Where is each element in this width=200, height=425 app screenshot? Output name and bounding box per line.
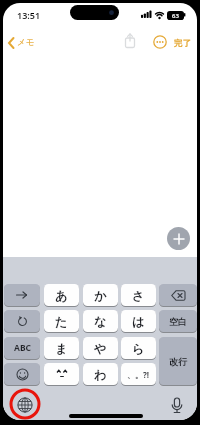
staticText: は xyxy=(132,314,145,329)
button[interactable] xyxy=(159,284,197,306)
button[interactable]: や xyxy=(83,337,118,359)
button[interactable]: か xyxy=(83,284,118,306)
staticText: ま xyxy=(55,341,68,356)
button[interactable]: ABC xyxy=(4,337,40,359)
button[interactable] xyxy=(44,363,79,385)
button[interactable]: な xyxy=(83,310,118,332)
staticText: 改行 xyxy=(169,356,187,367)
staticText: あ xyxy=(55,288,68,303)
staticText: 空白 xyxy=(169,316,187,327)
staticText: さ xyxy=(132,288,145,303)
button[interactable] xyxy=(167,227,190,250)
button[interactable]: 、。?! xyxy=(121,363,156,385)
button[interactable]: さ xyxy=(121,284,156,306)
button[interactable] xyxy=(153,35,167,49)
button[interactable] xyxy=(4,284,40,306)
button[interactable] xyxy=(4,310,40,332)
button[interactable]: わ xyxy=(83,363,118,385)
staticText: ら xyxy=(132,341,145,356)
button[interactable]: メモ xyxy=(5,34,39,52)
staticText: か xyxy=(94,288,107,303)
staticText: や xyxy=(94,341,107,356)
staticText: ABC xyxy=(14,342,31,354)
staticText: た xyxy=(55,314,68,329)
button[interactable] xyxy=(168,397,186,415)
button[interactable]: ま xyxy=(44,337,79,359)
staticText: わ xyxy=(94,367,107,382)
button[interactable]: ら xyxy=(121,337,156,359)
button[interactable]: 空白 xyxy=(159,310,197,332)
button[interactable] xyxy=(124,33,136,49)
button[interactable]: 完了 xyxy=(174,38,191,49)
button[interactable]: た xyxy=(44,310,79,332)
staticText: な xyxy=(94,314,107,329)
staticText: 13:51 xyxy=(17,9,41,21)
staticText: 63 xyxy=(172,12,179,20)
button[interactable]: は xyxy=(121,310,156,332)
staticText: メモ xyxy=(17,37,35,48)
button[interactable]: 改行 xyxy=(159,337,197,385)
button[interactable] xyxy=(4,363,40,385)
button[interactable] xyxy=(16,396,34,414)
staticText: 、。?! xyxy=(127,369,150,380)
button[interactable]: あ xyxy=(44,284,79,306)
